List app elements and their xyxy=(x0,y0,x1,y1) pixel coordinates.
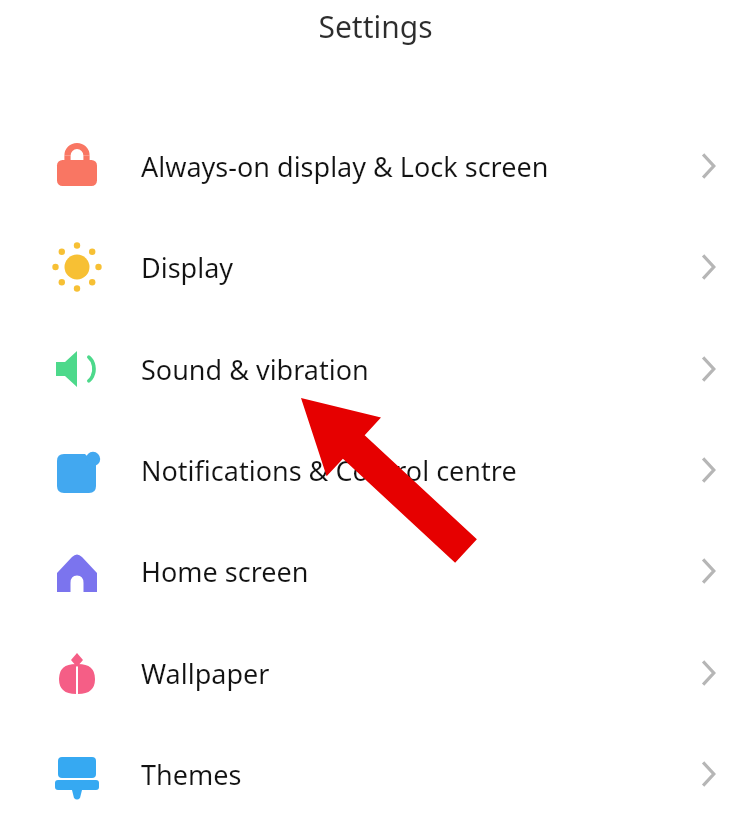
button[interactable]: Themes xyxy=(0,724,750,824)
staticText: Settings xyxy=(318,6,433,47)
staticText: Always-on display & Lock screen xyxy=(141,148,549,185)
staticText: Sound & vibration xyxy=(141,351,369,388)
button[interactable]: Display xyxy=(0,217,750,317)
staticText: Themes xyxy=(141,756,242,793)
staticText: Display xyxy=(141,249,234,286)
button[interactable]: Wallpaper xyxy=(0,623,750,723)
button[interactable]: Always-on display & Lock screen xyxy=(0,116,750,216)
button[interactable]: Home screen xyxy=(0,521,750,621)
staticText: Home screen xyxy=(141,553,309,590)
staticText: Notifications & Control centre xyxy=(141,452,517,489)
staticText: Wallpaper xyxy=(141,655,270,692)
button[interactable]: Sound & vibration xyxy=(0,319,750,419)
button[interactable]: Notifications & Control centre xyxy=(0,420,750,520)
